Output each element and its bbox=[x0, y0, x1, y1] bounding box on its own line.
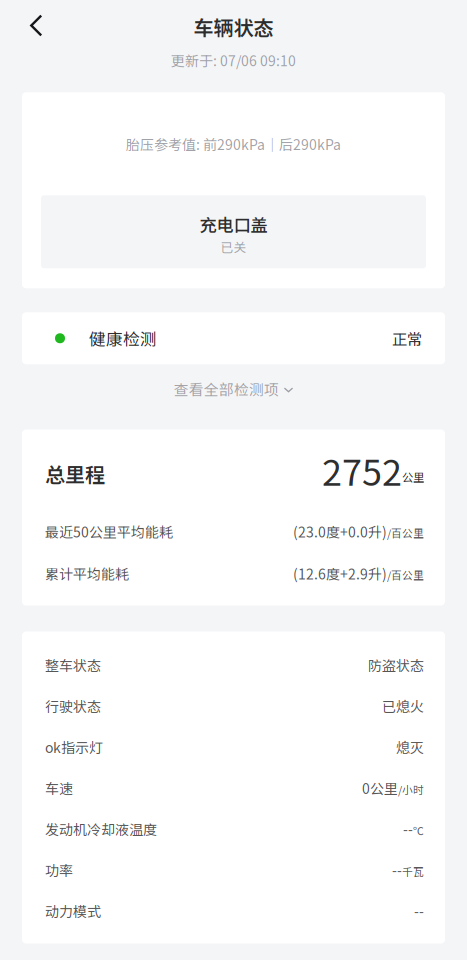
staticText: ℃ bbox=[413, 823, 424, 838]
staticText: 熄灭 bbox=[396, 737, 424, 757]
button[interactable]: 健康检测 bbox=[22, 312, 445, 364]
staticText: 胎压参考值: 前290kPa｜后290kPa bbox=[126, 134, 341, 154]
staticText: 最近50公里平均能耗 bbox=[45, 521, 173, 542]
staticText: 整车状态 bbox=[45, 655, 101, 675]
staticText: 车辆状态 bbox=[193, 12, 273, 41]
staticText: 动力模式 bbox=[45, 901, 101, 921]
button[interactable]: 返回 bbox=[0, 1, 58, 46]
button[interactable]: 充电口盖 bbox=[41, 195, 426, 268]
staticText: ok指示灯 bbox=[45, 737, 103, 757]
staticText: 总里程 bbox=[45, 459, 105, 488]
staticText: (23.0度+0.0升) bbox=[293, 521, 387, 542]
staticText: 发动机冷却液温度 bbox=[45, 819, 157, 839]
staticText: 更新于: 07/06 09:10 bbox=[171, 50, 296, 70]
staticText: 已熄火 bbox=[382, 696, 424, 716]
staticText: 千瓦 bbox=[402, 864, 424, 879]
staticText: /小时 bbox=[398, 782, 424, 797]
button[interactable]: 查看全部检测项 bbox=[158, 365, 309, 412]
staticText: 健康检测 bbox=[89, 326, 157, 350]
staticText: 行驶状态 bbox=[45, 696, 101, 716]
staticText: 防盗状态 bbox=[368, 655, 424, 675]
staticText: 0公里 bbox=[362, 778, 398, 798]
staticText: 正常 bbox=[392, 327, 422, 349]
staticText: 公里 bbox=[402, 469, 424, 485]
staticText: 充电口盖 bbox=[199, 212, 267, 237]
staticText: (12.6度+2.9升) bbox=[293, 563, 387, 584]
staticText: 2752 bbox=[322, 444, 402, 496]
staticText: 查看全部检测项 bbox=[174, 378, 279, 399]
staticText: 功率 bbox=[45, 860, 73, 880]
staticText: 累计平均能耗 bbox=[45, 563, 129, 584]
staticText: 已关 bbox=[220, 238, 246, 256]
staticText: 车速 bbox=[45, 778, 73, 798]
staticText: /百公里 bbox=[387, 525, 424, 541]
staticText: -- bbox=[392, 860, 402, 880]
staticText: -- bbox=[403, 819, 413, 839]
staticText: /百公里 bbox=[387, 567, 424, 583]
staticText: -- bbox=[414, 901, 424, 921]
